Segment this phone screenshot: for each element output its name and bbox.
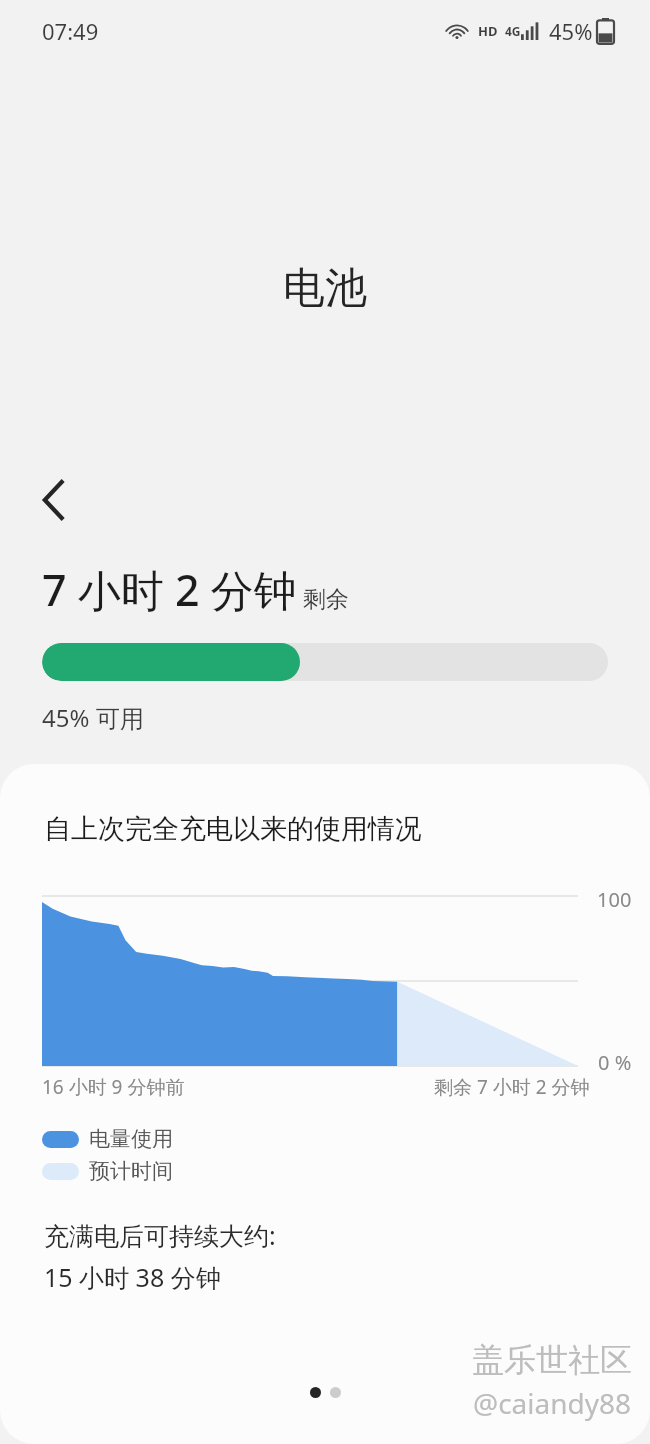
staticText: @caiandy88 [473,1384,632,1422]
staticText: 15 小时 38 分钟 [44,1260,221,1294]
staticText: 电池 [0,262,650,315]
staticText: 盖乐世社区 [472,1340,632,1380]
staticText: 电量使用 [89,1126,173,1152]
staticText: 7 小时 2 分钟 [42,560,297,619]
staticText: 45% [549,16,593,46]
staticText: 16 小时 9 分钟前 [42,1074,185,1100]
staticText: 0 % [598,1049,632,1076]
staticText: 剩余 [303,585,349,614]
staticText: HD [478,22,498,40]
staticText: 预计时间 [89,1158,173,1184]
staticText: 45% 可用 [42,701,144,734]
staticText: 4G [505,23,521,39]
staticText: 自上次完全充电以来的使用情况 [44,812,422,846]
button[interactable]: 电量使用 [42,1126,173,1152]
button[interactable]: 预计时间 [42,1158,173,1184]
staticText: 07:49 [42,16,99,46]
staticText: 100 [597,886,632,913]
button[interactable]: Back [24,470,84,530]
staticText: 充满电后可持续大约: [44,1218,276,1252]
staticText: 剩余 7 小时 2 分钟 [434,1074,590,1100]
